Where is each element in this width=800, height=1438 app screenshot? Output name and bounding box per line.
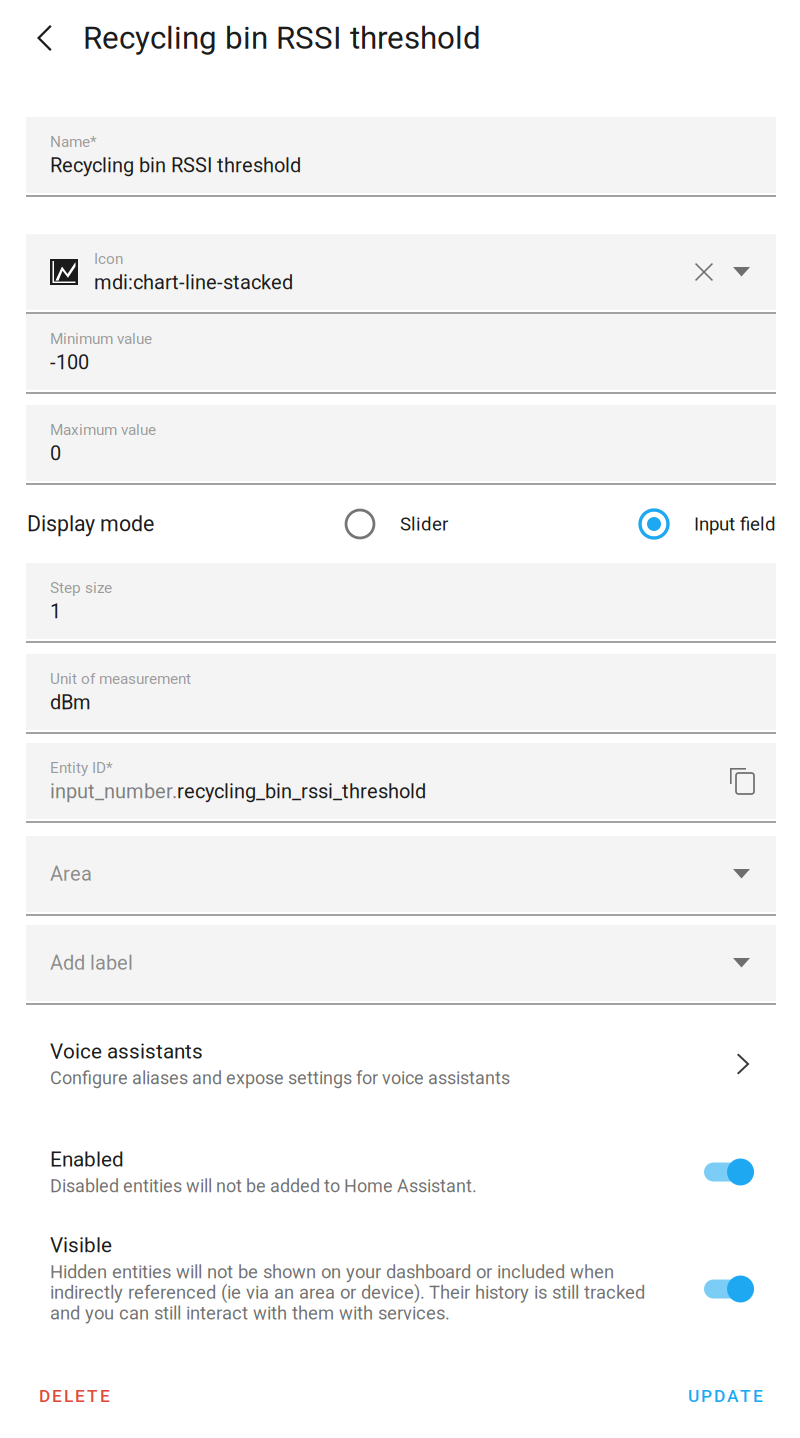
staticText: Entity ID* [50,759,113,777]
staticText: and you can still interact with them wit… [50,1302,450,1324]
button[interactable]: Choose area [723,859,760,889]
staticText: dBm [50,691,91,714]
staticText: Name* [50,133,97,151]
button[interactable]: Visible [704,1275,754,1303]
button[interactable]: Slider [346,510,448,538]
staticText: input_number. [50,780,177,803]
staticText: Step size [50,579,112,597]
staticText: Recycling bin RSSI threshold [50,154,301,177]
staticText: Hidden entities will not be shown on you… [50,1261,614,1283]
button[interactable]: Back [17,7,71,69]
staticText: 1 [50,600,61,623]
button[interactable]: Input field [640,510,776,538]
staticText: Input field [694,513,776,535]
staticText: Add label [50,951,133,975]
staticText: Voice assistants [50,1039,203,1063]
staticText: recycling_bin_rssi_threshold [177,780,426,803]
staticText: Icon [94,250,123,268]
button[interactable]: Voice assistants [26,1029,776,1099]
staticText: Minimum value [50,330,152,348]
button[interactable]: U P D A T E [675,1375,776,1417]
staticText: U P D A T E [688,1386,763,1406]
staticText: Configure aliases and expose settings fo… [50,1068,510,1089]
staticText: D E L E T E [39,1386,110,1406]
staticText: Display mode [27,511,154,536]
button[interactable]: Enabled [704,1158,754,1186]
button[interactable]: Copy entity ID [724,764,760,798]
staticText: mdi:chart-line-stacked [94,271,293,294]
staticText: Maximum value [50,421,156,439]
button[interactable]: D E L E T E [26,1375,123,1417]
staticText: Slider [400,513,448,535]
button[interactable]: Choose label [723,948,760,978]
staticText: Disabled entities will not be added to H… [50,1176,477,1197]
button[interactable]: Show icon suggestions [723,257,760,287]
staticText: Visible [50,1233,112,1257]
staticText: Recycling bin RSSI threshold [83,20,481,56]
staticText: Unit of measurement [50,670,191,688]
staticText: indirectly referenced (ie via an area or… [50,1282,645,1303]
staticText: 0 [50,442,61,465]
staticText: Enabled [50,1147,124,1171]
staticText: -100 [50,351,89,374]
button[interactable]: Clear icon [685,255,723,289]
staticText: Area [50,862,92,886]
